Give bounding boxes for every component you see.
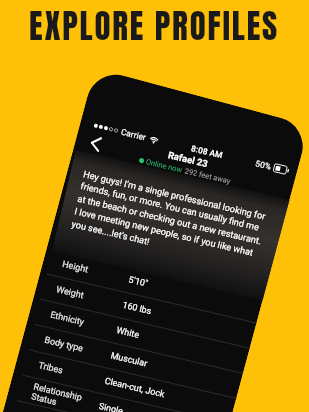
button[interactable]: Back xyxy=(84,130,108,157)
staticText: 5'10" xyxy=(127,274,150,290)
staticText: Muscular xyxy=(109,349,149,371)
button[interactable]: Body type xyxy=(28,318,243,405)
staticText: 50% xyxy=(254,158,273,172)
staticText: Rafael 23 xyxy=(167,148,210,170)
staticText: Online now xyxy=(145,156,183,176)
staticText: Height xyxy=(61,257,130,287)
staticText: White xyxy=(115,324,141,342)
staticText: Ethnicity xyxy=(49,307,118,338)
button[interactable]: Weight xyxy=(40,268,256,355)
button[interactable]: Tribes xyxy=(22,344,236,412)
staticText: Clean-cut, Jock xyxy=(103,374,167,402)
staticText: Tribes xyxy=(37,358,106,388)
staticText: 8:08 AM xyxy=(190,142,224,161)
staticText: 160 lbs xyxy=(121,299,153,318)
staticText: Body type xyxy=(43,333,112,363)
staticText: Relationship Status xyxy=(30,379,102,412)
button[interactable]: Height xyxy=(46,242,263,330)
staticText: EXPLORE PROFILES xyxy=(29,1,280,51)
staticText: Carrier xyxy=(120,126,148,143)
staticText: 292 feet away xyxy=(184,165,232,187)
button[interactable]: Relationship Status xyxy=(16,369,229,412)
staticText: Hey guys! I'm a single professional look… xyxy=(68,163,271,279)
staticText: Weight xyxy=(55,282,124,312)
button[interactable]: Ethnicity xyxy=(34,293,250,380)
staticText: Single xyxy=(97,400,125,412)
